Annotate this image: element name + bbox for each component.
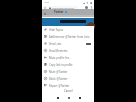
staticText: View Moments [49,49,68,53]
staticText: Copy link to profile [49,63,73,67]
button[interactable]: Hide Topics [42,26,94,33]
button[interactable]: Mute @Twitter [42,68,94,75]
button[interactable]: Block @Twitter [42,75,94,82]
button[interactable]: Copy link to profile [42,61,94,68]
button[interactable]: Add/remove @Twitter from Lists [42,33,94,40]
button[interactable]: Back [43,6,47,10]
button[interactable]: Recent apps [77,95,82,100]
staticText: Block @Twitter [49,77,68,81]
staticText: mobile.twitter.com/Twitter [52,7,75,9]
staticText: 2.9M Tweets [54,14,66,17]
staticText: Add/remove @Twitter from Lists [49,35,90,39]
button[interactable]: More options [90,6,93,9]
button[interactable]: Home [66,95,71,100]
staticText: View Lists [49,42,62,46]
button[interactable]: mobile.twitter.com/Twitter [48,6,78,9]
button[interactable]: Back [55,95,60,100]
staticText: Mute @Twitter [49,70,68,74]
staticText: Mute profile for... [49,56,71,60]
button[interactable]: Cancel [42,86,94,95]
button[interactable]: View Moments [42,47,94,54]
staticText: Report @Twitter [49,84,70,88]
button[interactable]: View Lists [42,40,94,47]
button[interactable]: Mute profile for... [42,54,94,61]
staticText: Hide Topics [49,28,64,32]
button[interactable]: Account [85,6,88,9]
button[interactable]: Report @Twitter [42,82,94,89]
staticText: Twitter [54,10,64,14]
staticText: 10:08 [44,1,49,4]
staticText: Cancel [64,89,73,93]
